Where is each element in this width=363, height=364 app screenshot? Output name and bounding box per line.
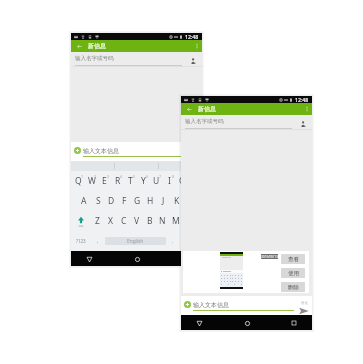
button[interactable]: Z [91, 211, 104, 231]
button[interactable]: U [150, 171, 163, 191]
staticText: Z [95, 215, 100, 227]
staticText: Y [141, 175, 146, 187]
button[interactable]: N [156, 211, 169, 231]
button[interactable]: More options [301, 103, 312, 115]
button[interactable]: B [143, 211, 156, 231]
button[interactable]: English [105, 237, 166, 245]
staticText: 新信息 [198, 105, 216, 113]
button[interactable]: T [124, 171, 137, 191]
button[interactable]: Recents [287, 316, 301, 330]
button[interactable]: . [166, 231, 180, 251]
button[interactable]: W [85, 171, 98, 191]
button[interactable]: Add attachment [183, 300, 192, 309]
button[interactable]: C [117, 211, 130, 231]
button[interactable]: Shift [71, 211, 91, 231]
staticText: T [128, 175, 133, 187]
button[interactable]: Pick contact [187, 55, 200, 67]
button[interactable]: I [163, 171, 176, 191]
staticText: 1 [81, 174, 84, 179]
staticText: 输入名字或号码 [75, 55, 114, 62]
staticText: 5 [133, 174, 136, 179]
button[interactable]: H [144, 191, 157, 211]
staticText: 4 [120, 174, 123, 179]
button[interactable]: G [131, 191, 144, 211]
staticText: D [108, 195, 115, 207]
button[interactable]: 使用 [281, 268, 305, 278]
button[interactable] [159, 161, 202, 171]
staticText: . [172, 238, 174, 245]
button[interactable]: D [105, 191, 118, 211]
staticText: 输入文本信息 [193, 301, 229, 309]
button[interactable]: F [118, 191, 131, 211]
button[interactable]: Home [240, 316, 254, 330]
staticText: O [179, 175, 186, 187]
button[interactable]: Back [181, 103, 198, 115]
staticText: G [134, 195, 141, 207]
staticText: 12:48 [185, 33, 199, 40]
button[interactable]: Q [71, 171, 85, 191]
staticText: 2015/05/13 [261, 255, 278, 259]
staticText: N [159, 215, 166, 227]
button[interactable]: J [157, 191, 170, 211]
button[interactable]: Back [82, 252, 96, 266]
button[interactable]: Back [71, 40, 88, 52]
staticText: 8 [172, 174, 175, 179]
button[interactable]: E [98, 171, 111, 191]
button[interactable]: R [111, 171, 124, 191]
button[interactable]: Enter [180, 231, 191, 251]
button[interactable]: ?123 [71, 231, 91, 251]
button[interactable]: X [104, 211, 117, 231]
staticText: X [108, 215, 113, 227]
staticText: 输入名字或号码 [185, 118, 224, 125]
staticText: J [162, 195, 165, 207]
staticText: C [121, 215, 127, 227]
button[interactable]: Add attachment [73, 146, 82, 155]
staticText: English [127, 238, 144, 245]
staticText: H [147, 195, 154, 207]
staticText: 查看 [288, 256, 299, 263]
staticText: ?123 [76, 238, 86, 244]
staticText: S [96, 195, 101, 207]
staticText: 输入文本信息 [83, 147, 119, 155]
staticText: U [153, 175, 160, 187]
staticText: I [168, 175, 171, 187]
staticText: B [147, 215, 153, 227]
button[interactable]: V [130, 211, 143, 231]
staticText: A [81, 195, 87, 207]
button[interactable]: Recents [177, 252, 191, 266]
button[interactable]: Y [137, 171, 150, 191]
button[interactable]: M [169, 211, 182, 231]
button[interactable]: More options [191, 40, 202, 52]
button[interactable]: Back [192, 316, 206, 330]
button[interactable]: 删除 [281, 282, 305, 292]
button[interactable]: A [77, 191, 91, 211]
staticText: Q [75, 175, 82, 187]
button[interactable]: O [176, 171, 189, 191]
staticText: K [174, 195, 180, 207]
button[interactable]: Pick contact [297, 118, 310, 130]
button[interactable]: K [170, 191, 183, 211]
staticText: 6 [146, 174, 149, 179]
button[interactable]: S [91, 191, 105, 211]
button[interactable]: 查看 [281, 254, 305, 264]
staticText: M [172, 215, 180, 227]
staticText: 新信息 [88, 42, 106, 50]
staticText: 12:48 [295, 96, 309, 103]
staticText: 2 [94, 174, 97, 179]
staticText: 3 [107, 174, 110, 179]
staticText: W [88, 175, 96, 187]
staticText: 删除 [288, 284, 299, 291]
button[interactable]: Send [297, 300, 310, 315]
staticText: E [102, 175, 107, 187]
button[interactable]: Home [130, 252, 144, 266]
